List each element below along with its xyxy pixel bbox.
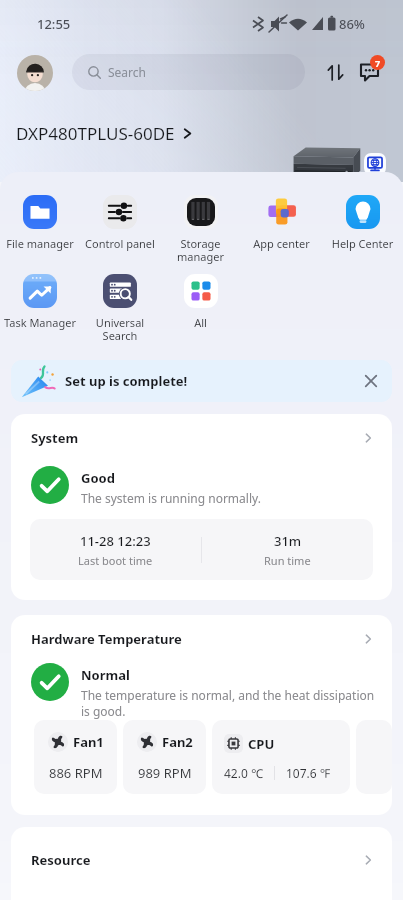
button[interactable]: Device status — [364, 153, 386, 175]
staticText: 989 RPM — [138, 764, 192, 782]
staticText: 86% — [339, 15, 365, 33]
staticText: CPU — [248, 735, 275, 753]
staticText: Set up is complete! — [65, 372, 188, 390]
button[interactable]: Resource — [11, 836, 392, 881]
staticText: Control panel — [80, 236, 160, 251]
button[interactable]: App center — [241, 195, 322, 251]
staticText: Run time — [264, 553, 311, 568]
staticText: The system is running normally. — [81, 490, 261, 506]
staticText: Fan1 — [73, 733, 104, 751]
button[interactable]: Task Manager — [0, 274, 80, 330]
button[interactable]: Control panel — [80, 195, 160, 251]
staticText: 42.0 ℃ — [224, 765, 263, 781]
staticText: Universal Search — [80, 315, 160, 343]
staticText: System — [31, 429, 79, 447]
staticText: Search — [108, 64, 146, 80]
button[interactable]: Universal Search — [80, 274, 160, 343]
staticText: Last boot time — [78, 553, 153, 568]
button[interactable]: File manager — [0, 195, 80, 251]
button[interactable]: Help Center — [322, 195, 403, 251]
staticText: Help Center — [322, 236, 403, 251]
button[interactable]: Transfers — [322, 59, 348, 85]
staticText: DXP480TPLUS-60DE — [16, 122, 175, 145]
staticText: All — [160, 315, 241, 330]
staticText: Storage manager — [160, 236, 241, 264]
button[interactable]: Storage manager — [160, 195, 241, 264]
button[interactable]: Dismiss — [360, 370, 382, 392]
staticText: File manager — [0, 236, 80, 251]
staticText: 31m — [274, 532, 302, 550]
button[interactable]: Search — [72, 54, 305, 90]
button[interactable]: All — [160, 274, 241, 330]
staticText: Good — [81, 469, 115, 487]
staticText: App center — [241, 236, 322, 251]
button[interactable]: CPU — [212, 720, 350, 794]
staticText: Task Manager — [0, 315, 80, 330]
staticText: The temperature is normal, and the heat … — [81, 687, 378, 719]
staticText: Fan2 — [162, 733, 193, 751]
button[interactable]: Messages — [357, 58, 383, 84]
staticText: 11-28 12:23 — [80, 532, 151, 550]
staticText: Hardware Temperature — [31, 630, 182, 648]
button[interactable]: Fan2 — [123, 720, 206, 794]
staticText: 107.6 ℉ — [286, 765, 331, 781]
staticText: 886 RPM — [49, 764, 103, 782]
button[interactable]: Fan1 — [34, 720, 117, 794]
staticText: 12:55 — [37, 15, 71, 33]
button[interactable]: System — [11, 414, 392, 459]
button[interactable]: Profile — [17, 55, 53, 91]
staticText: Resource — [31, 851, 91, 869]
button[interactable]: Hardware Temperature — [11, 615, 392, 660]
staticText: Normal — [81, 666, 130, 684]
button[interactable]: Set up is complete! — [11, 360, 392, 402]
staticText: 7 — [375, 57, 381, 69]
button[interactable]: DXP480TPLUS-60DE — [16, 122, 193, 145]
